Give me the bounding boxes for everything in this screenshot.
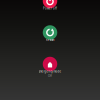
button[interactable]: Restart [0, 25, 100, 40]
staticText: Power off [43, 7, 57, 10]
button[interactable]: Power off [0, 0, 100, 8]
staticText: Restart [45, 38, 54, 42]
staticText: Emergency mode [38, 70, 61, 73]
staticText: Off [48, 74, 52, 78]
button[interactable]: Emergency mode [0, 57, 100, 71]
